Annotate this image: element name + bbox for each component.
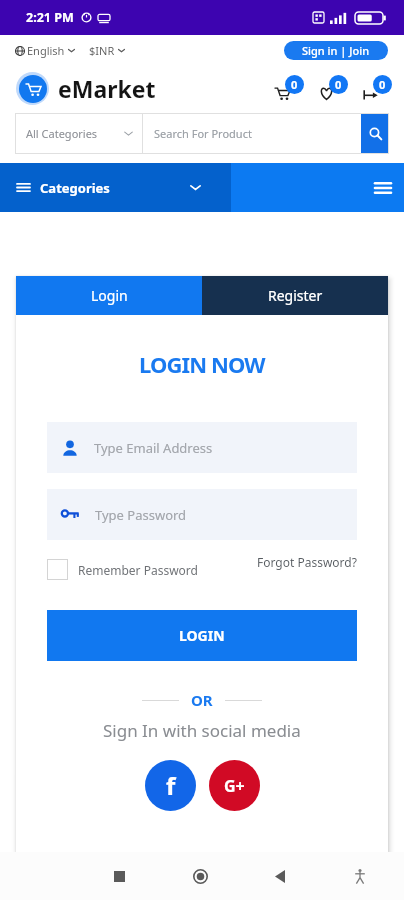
staticText: LOGIN NOW <box>139 349 265 379</box>
button[interactable]: Search For Product <box>143 113 361 154</box>
staticText: Type Password <box>95 506 187 524</box>
staticText: Forgot Password? <box>257 554 357 570</box>
button[interactable]: Login <box>16 276 202 315</box>
button[interactable]: Home <box>180 856 220 896</box>
button[interactable]: Wishlist <box>319 75 348 101</box>
staticText: Sign In with social media <box>103 719 301 742</box>
staticText: LOGIN <box>179 626 225 645</box>
staticText: All Categories <box>26 126 98 141</box>
button[interactable]: Back <box>260 856 300 896</box>
button[interactable]: eMarket <box>16 72 156 105</box>
button[interactable]: Sign in | Join <box>284 41 388 60</box>
staticText: 0 <box>379 77 386 92</box>
button[interactable]: All Categories <box>15 113 142 154</box>
button[interactable]: Register <box>202 276 388 315</box>
staticText: f <box>166 769 176 802</box>
button[interactable]: Categories <box>0 163 231 212</box>
staticText: Login <box>91 286 128 305</box>
staticText: Remember Password <box>78 562 198 578</box>
button[interactable]: Accessibility <box>340 856 380 896</box>
staticText: eMarket <box>58 73 156 104</box>
staticText: $INR <box>89 43 115 58</box>
button[interactable]: Sign in with Facebook <box>145 760 196 811</box>
button[interactable]: Type Password <box>47 489 357 540</box>
staticText: Type Email Address <box>94 439 213 457</box>
button[interactable]: Compare <box>363 75 392 101</box>
button[interactable]: Recents <box>99 856 139 896</box>
staticText: Sign in | Join <box>302 43 370 58</box>
staticText: 2:21 PM <box>26 9 74 26</box>
button[interactable]: LOGIN <box>47 610 357 661</box>
staticText: English <box>27 43 65 58</box>
button[interactable]: English <box>13 39 77 62</box>
button[interactable]: Menu <box>231 163 404 212</box>
staticText: Register <box>268 286 323 305</box>
staticText: OR <box>191 690 213 710</box>
button[interactable]: Remember Password <box>47 559 198 580</box>
button[interactable]: Search <box>361 113 389 154</box>
button[interactable]: Sign in with Google <box>209 760 260 811</box>
button[interactable]: $INR <box>87 39 127 62</box>
staticText: G+ <box>224 775 245 797</box>
staticText: Search For Product <box>154 126 252 141</box>
button[interactable]: Type Email Address <box>47 422 357 473</box>
staticText: Categories <box>40 179 110 197</box>
staticText: 0 <box>291 77 298 92</box>
button[interactable]: Cart <box>275 75 304 101</box>
staticText: 0 <box>335 77 342 92</box>
button[interactable]: Forgot Password? <box>257 554 357 570</box>
